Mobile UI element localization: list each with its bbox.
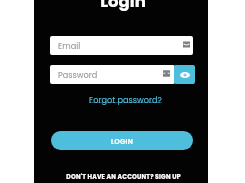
staticText: LOGIN xyxy=(111,137,133,147)
button[interactable]: Show password xyxy=(174,65,195,84)
button[interactable]: Password xyxy=(50,65,175,84)
button[interactable]: Email xyxy=(50,36,193,55)
staticText: Login xyxy=(36,0,210,13)
staticText: Password xyxy=(58,69,98,80)
button[interactable]: DON'T HAVE AN ACCOUNT? SIGN UP xyxy=(66,173,181,182)
staticText: Email xyxy=(58,40,81,51)
button[interactable]: Forgot password? xyxy=(89,94,162,105)
button[interactable]: LOGIN xyxy=(51,131,193,150)
